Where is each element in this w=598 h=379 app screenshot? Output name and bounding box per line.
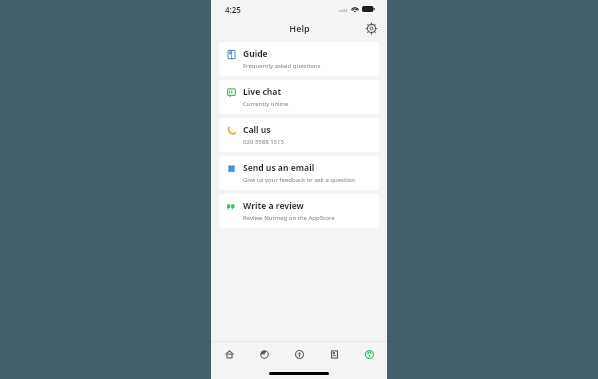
staticText: Frequently asked questions — [243, 62, 321, 70]
staticText: Call us — [243, 124, 271, 136]
staticText: Write a review — [243, 200, 304, 212]
staticText: Review Nutmeg on the AppStore — [243, 214, 335, 222]
staticText: Live chat — [243, 86, 282, 98]
button[interactable]: Guide — [219, 42, 379, 76]
staticText: Send us an email — [243, 162, 315, 174]
staticText: Guide — [243, 48, 268, 60]
button[interactable]: Help — [352, 342, 387, 367]
button[interactable]: Home — [211, 342, 247, 367]
button[interactable]: Call us — [219, 118, 379, 152]
staticText: 4:25 — [225, 4, 241, 15]
staticText: Currently online — [243, 100, 289, 108]
staticText: Help — [289, 22, 310, 34]
button[interactable]: Live chat — [219, 80, 379, 114]
staticText: Give us your feedback or ask a question — [243, 176, 356, 184]
staticText: 020 3588 1515 — [243, 138, 284, 146]
button[interactable]: Settings — [364, 21, 378, 35]
button[interactable]: Send us an email — [219, 156, 379, 190]
button[interactable]: Pot — [282, 342, 317, 367]
button[interactable]: Documents — [317, 342, 352, 367]
button[interactable]: Write a review — [219, 194, 379, 228]
button[interactable]: Portfolio — [247, 342, 282, 367]
